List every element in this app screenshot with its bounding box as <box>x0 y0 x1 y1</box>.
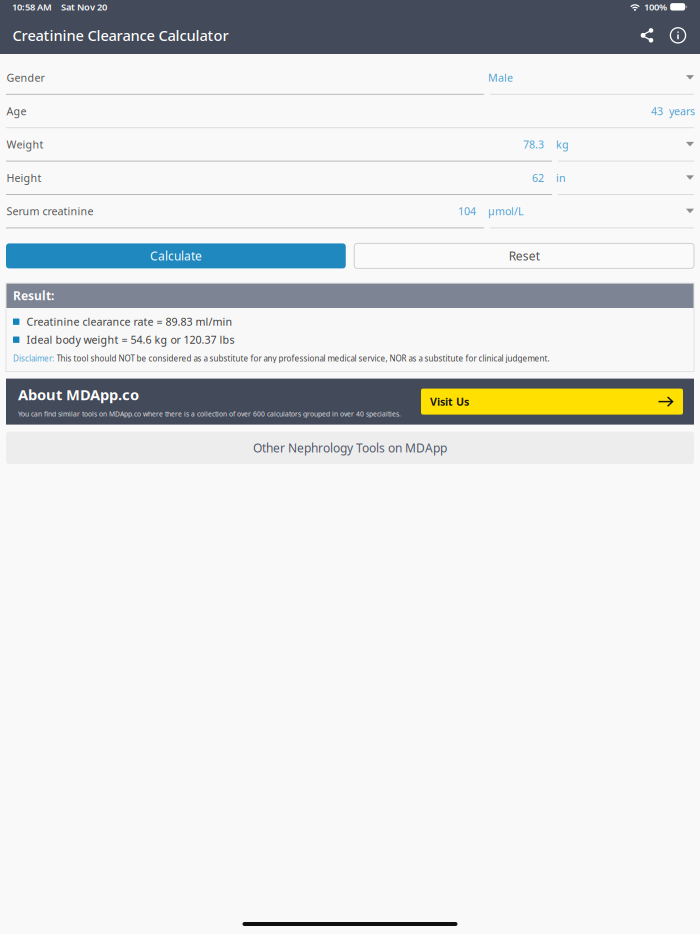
staticText: in <box>556 171 566 185</box>
staticText: This tool should NOT be considered as a … <box>56 353 549 364</box>
staticText: Reset <box>509 248 540 264</box>
staticText: years <box>669 104 695 118</box>
button[interactable]: Weight <box>0 128 700 162</box>
button[interactable]: Info <box>664 21 692 49</box>
staticText: Calculate <box>150 248 202 264</box>
staticText: 43 <box>651 104 663 118</box>
staticText: Height <box>6 171 41 185</box>
button[interactable]: Height <box>0 162 700 195</box>
staticText: 62 <box>532 171 544 185</box>
button[interactable]: Reset <box>354 243 694 268</box>
staticText: 78.3 <box>523 137 544 151</box>
staticText: Sat Nov 20 <box>61 1 107 13</box>
staticText: Ideal body weight = 54.6 kg or 120.37 lb… <box>26 333 234 347</box>
staticText: 100% <box>644 1 667 13</box>
staticText: Male <box>488 70 513 85</box>
button[interactable]: Calculate <box>6 243 346 268</box>
staticText: Gender <box>6 70 44 85</box>
staticText: µmol/L <box>488 204 524 218</box>
staticText: 10:58 AM <box>12 1 52 13</box>
staticText: Disclaimer: <box>13 353 54 364</box>
staticText: 104 <box>458 204 476 218</box>
button[interactable]: Share <box>633 21 661 49</box>
button[interactable]: Gender <box>0 61 700 95</box>
staticText: Visit Us <box>430 394 469 409</box>
staticText: Result: <box>13 288 54 303</box>
button[interactable]: Other Nephrology Tools on MDApp <box>6 432 694 464</box>
staticText: Creatinine Clearance Calculator <box>12 26 228 45</box>
staticText: Serum creatinine <box>6 204 93 218</box>
staticText: Creatinine clearance rate = 89.83 ml/min <box>26 315 232 329</box>
staticText: Other Nephrology Tools on MDApp <box>253 440 447 456</box>
staticText: About MDApp.co <box>18 385 139 404</box>
staticText: Age <box>6 104 26 118</box>
staticText: You can find similar tools on MDApp.co w… <box>18 409 401 418</box>
staticText: Weight <box>6 137 43 151</box>
button[interactable]: Serum creatinine <box>0 195 700 228</box>
staticText: kg <box>556 137 569 151</box>
button[interactable]: Visit Us <box>421 389 683 415</box>
button[interactable]: Age <box>0 95 700 128</box>
